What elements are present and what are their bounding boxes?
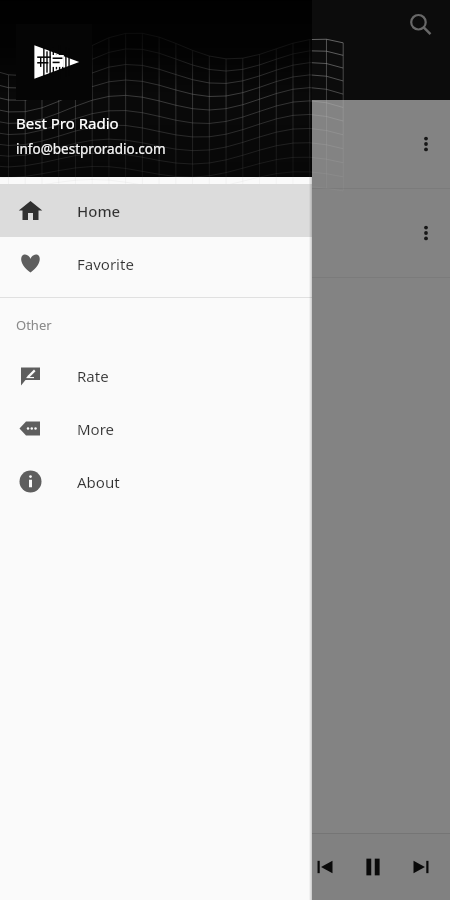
button[interactable]: Pause <box>354 848 392 886</box>
staticText: info@bestproradio.com <box>16 140 166 158</box>
staticText: Best Pro Radio <box>16 113 119 133</box>
button[interactable]: Search <box>402 6 438 42</box>
button[interactable]: More options <box>0 100 450 188</box>
button[interactable]: More <box>0 402 312 455</box>
button[interactable]: Favorite <box>0 237 312 290</box>
staticText: About <box>77 472 120 492</box>
staticText: Favorite <box>77 254 134 274</box>
staticText: Other <box>16 316 52 334</box>
staticText: CATEGORY <box>14 65 92 84</box>
button[interactable]: About <box>0 455 312 508</box>
button[interactable]: Next <box>402 848 440 886</box>
button[interactable]: More options <box>408 215 444 251</box>
staticText: Home <box>77 201 121 221</box>
button[interactable]: More options <box>0 189 450 277</box>
staticText: Rate <box>77 366 109 386</box>
button[interactable]: Rate <box>0 349 312 402</box>
button[interactable]: More options <box>408 126 444 162</box>
button[interactable]: Home <box>0 184 312 237</box>
button[interactable]: Previous <box>306 848 344 886</box>
staticText: More <box>77 419 115 439</box>
